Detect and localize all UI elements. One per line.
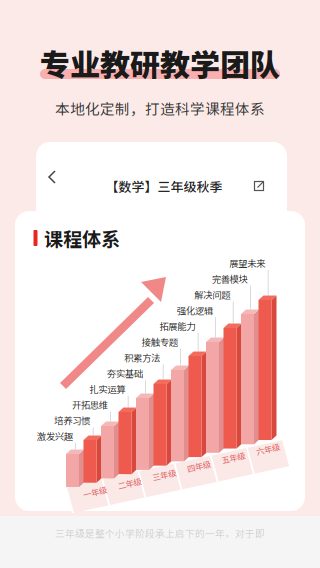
staticText: 夯实基础 xyxy=(107,366,143,380)
button[interactable]: Open in browser xyxy=(253,180,265,192)
staticText: 激发兴趣 xyxy=(37,429,73,443)
staticText: 展望未来 xyxy=(229,256,265,270)
staticText: 本地化定制，打造科学课程体系 xyxy=(55,97,265,119)
staticText: 六年级 xyxy=(256,443,280,455)
staticText: 五年级 xyxy=(221,452,245,464)
staticText: 课程体系 xyxy=(44,224,120,252)
staticText: 三年级 xyxy=(152,469,176,481)
staticText: 二年级 xyxy=(118,477,142,489)
staticText: 专业教研教学团队 xyxy=(40,41,280,85)
staticText: 开拓思维 xyxy=(72,398,108,411)
button[interactable]: Back xyxy=(44,168,62,186)
staticText: 强化逻辑 xyxy=(177,303,213,317)
staticText: 培养习惯 xyxy=(54,413,90,427)
staticText: 拓展能力 xyxy=(159,319,195,333)
staticText: 【数学】三年级秋季 xyxy=(105,177,222,195)
staticText: 解决问题 xyxy=(194,288,230,301)
staticText: 四年级 xyxy=(187,460,211,472)
staticText: 一年级 xyxy=(83,486,107,498)
staticText: 扎实运算 xyxy=(89,382,125,396)
staticText: 积累方法 xyxy=(124,351,160,364)
staticText: 接触专题 xyxy=(142,335,178,348)
staticText: 完善模块 xyxy=(212,272,248,285)
staticText: 三年级是整个小学阶段承上启下的一年，对于即 xyxy=(55,526,265,540)
